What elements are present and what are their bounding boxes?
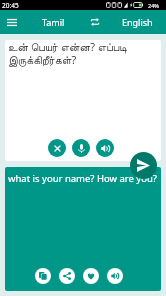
button[interactable]: Tamil xyxy=(24,10,82,34)
staticText: what is your name? How are you? xyxy=(8,172,157,185)
button[interactable]: Speak source xyxy=(96,139,114,157)
staticText: English xyxy=(122,16,153,28)
button[interactable]: Open menu xyxy=(0,10,24,34)
button[interactable]: Copy xyxy=(35,268,51,284)
button[interactable]: Speak translation xyxy=(107,268,123,284)
button[interactable]: Translate xyxy=(130,152,157,179)
button[interactable]: Voice input xyxy=(72,139,90,157)
staticText: உன் பெயர் என்ன? எப்படி இருக்கிறீர்கள்? xyxy=(8,40,158,67)
button[interactable]: Share xyxy=(59,268,75,284)
staticText: 24% xyxy=(148,2,159,9)
staticText: 20:45 xyxy=(2,1,19,10)
button[interactable]: English xyxy=(108,10,166,34)
button[interactable]: Clear text xyxy=(48,139,66,157)
staticText: Tamil xyxy=(42,16,65,28)
button[interactable]: Favourite xyxy=(83,268,99,284)
button[interactable]: Swap languages xyxy=(82,10,108,34)
